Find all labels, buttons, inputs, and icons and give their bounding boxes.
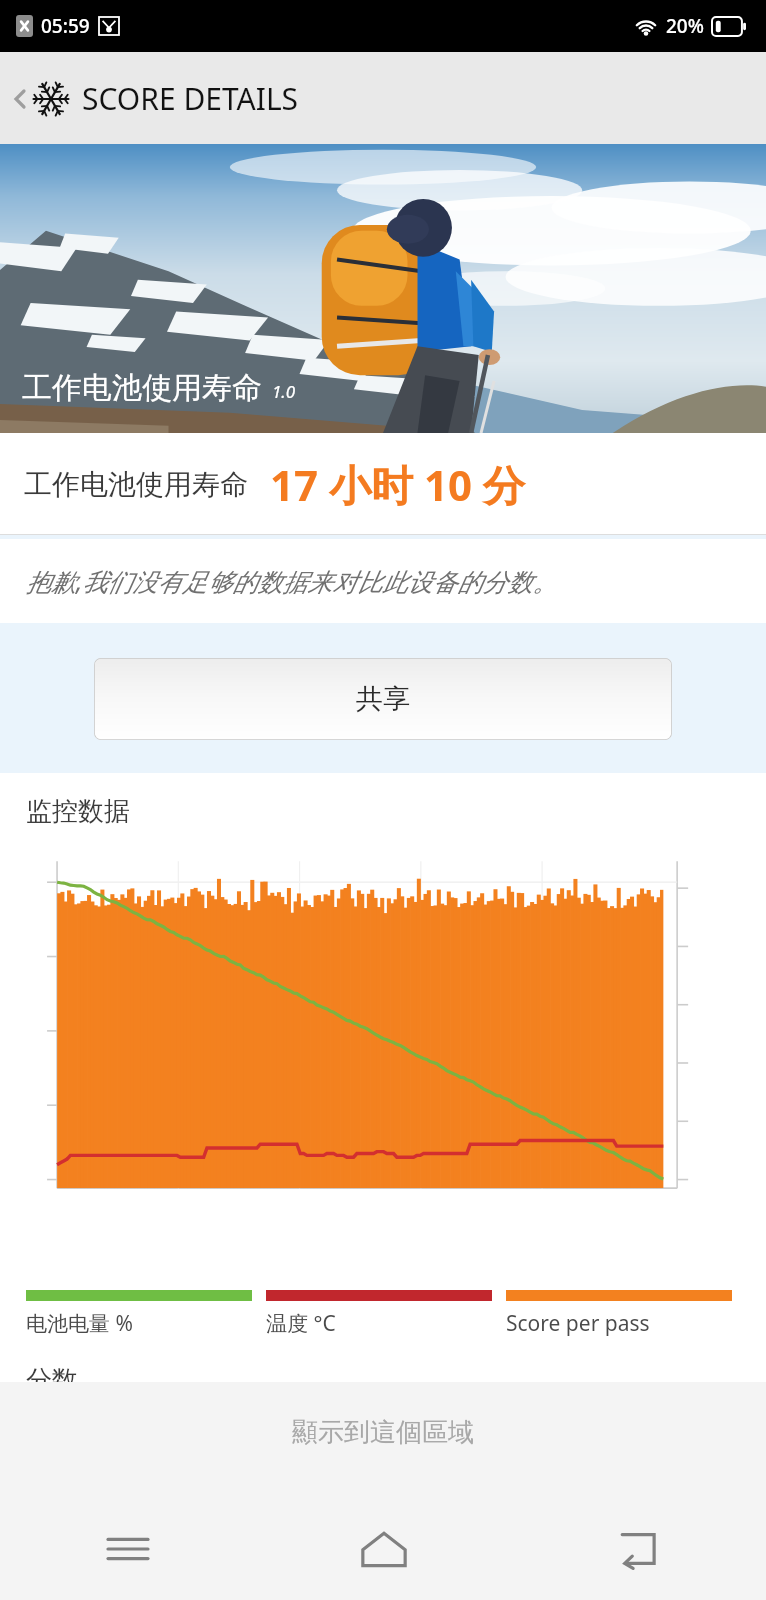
staticText: 工作电池使用寿命 (22, 369, 262, 407)
staticText: 监控数据 (26, 795, 130, 828)
button[interactable]: 共享 (94, 658, 672, 740)
staticText: 抱歉,我们没有足够的数据来对比此设备的分数。 (26, 564, 558, 598)
staticText: 顯示到這個區域 (292, 1416, 474, 1449)
staticText: 1.0 (272, 380, 296, 403)
staticText: SCORE DETAILS (82, 78, 299, 119)
button[interactable]: Home (256, 1497, 511, 1600)
button[interactable]: Recent apps (0, 1497, 256, 1600)
staticText: 工作电池使用寿命 (24, 467, 248, 502)
staticText: 分数 (26, 1364, 78, 1382)
button[interactable]: Back (10, 78, 299, 119)
staticText: 共享 (356, 682, 410, 716)
staticText: 温度 °C (266, 1309, 336, 1338)
staticText: 20% (666, 13, 704, 39)
staticText: 17 小时 10 分 (270, 456, 525, 513)
staticText: Score per pass (506, 1309, 650, 1338)
staticText: 05:59 (41, 13, 90, 39)
staticText: 电池电量 % (26, 1309, 133, 1338)
button[interactable]: Back (511, 1497, 766, 1600)
